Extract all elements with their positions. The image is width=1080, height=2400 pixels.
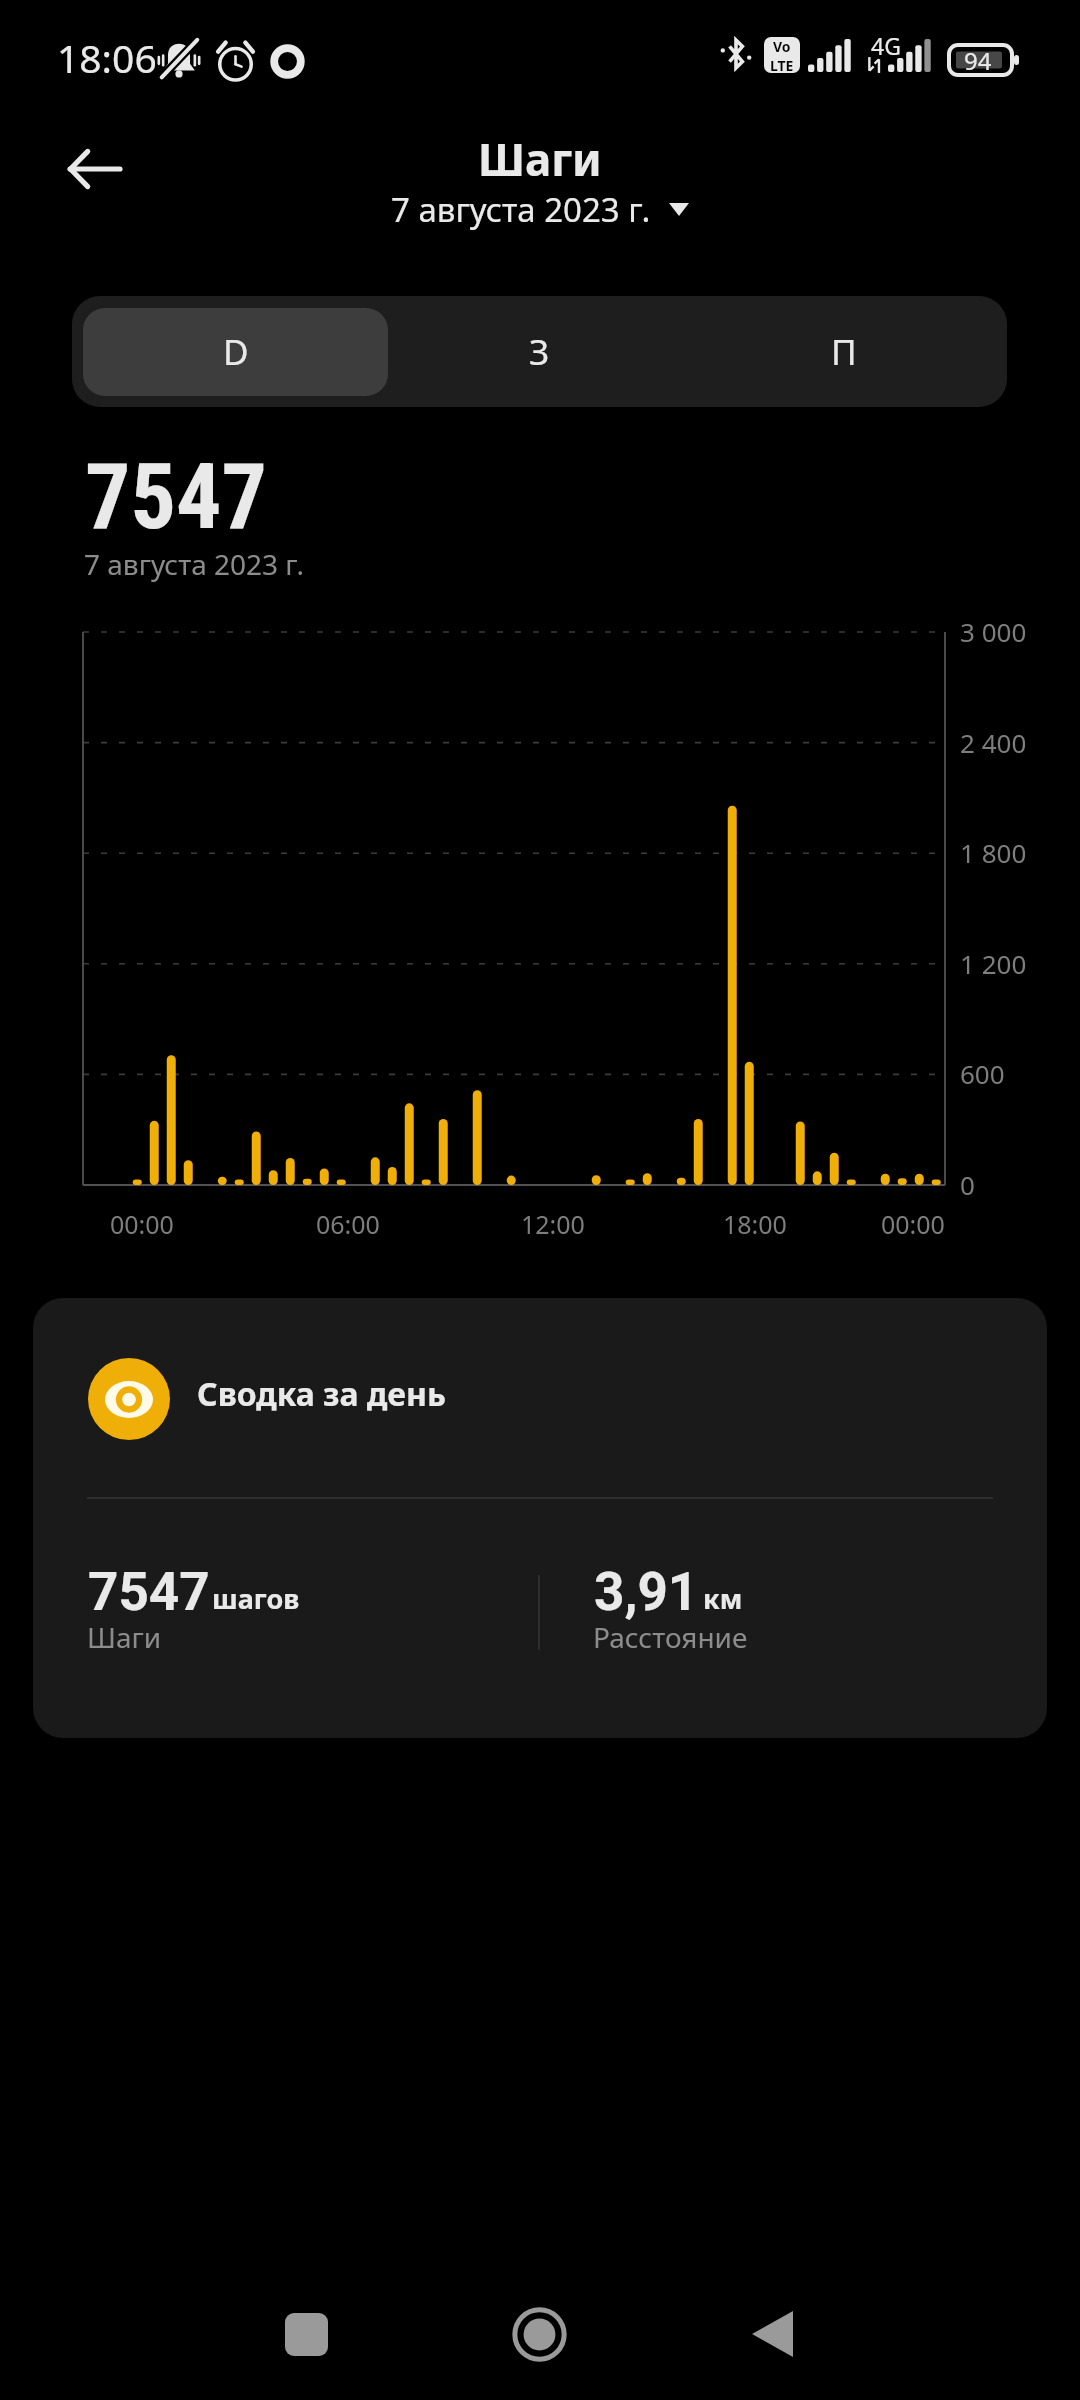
staticText: 7547	[85, 445, 267, 550]
staticText: шагов	[212, 1580, 300, 1617]
staticText: 00:00	[110, 1207, 174, 1241]
button[interactable]: Недавние приложения	[246, 2274, 366, 2394]
staticText: LTE	[770, 56, 794, 73]
staticText: 3 000	[960, 614, 1027, 649]
staticText: 18:06	[57, 31, 157, 84]
staticText: 3,91	[594, 1561, 699, 1623]
staticText: Vo	[773, 37, 791, 56]
button[interactable]: П	[691, 308, 996, 396]
button[interactable]: Назад	[712, 2274, 832, 2394]
staticText: 4G	[871, 30, 901, 61]
button[interactable]: 7 августа 2023 г.	[383, 183, 697, 236]
staticText: 06:00	[316, 1207, 380, 1241]
staticText: Сводка за день	[197, 1372, 446, 1416]
staticText: 7 августа 2023 г.	[84, 545, 304, 583]
staticText: Шаги	[87, 1618, 162, 1656]
button[interactable]: Главный экран	[479, 2274, 599, 2394]
staticText: км	[703, 1580, 743, 1617]
staticText: 1 800	[960, 835, 1027, 870]
staticText: З	[529, 328, 550, 376]
staticText: 7 августа 2023 г.	[391, 187, 651, 232]
button[interactable]: Сводка за день	[33, 1298, 1047, 1738]
staticText: 94	[964, 44, 992, 74]
staticText: Расстояние	[593, 1618, 748, 1656]
staticText: 00:00	[881, 1207, 945, 1241]
staticText: 18:00	[723, 1207, 787, 1241]
staticText: Шаги	[478, 129, 602, 189]
button[interactable]: D	[83, 308, 388, 396]
staticText: 600	[960, 1056, 1005, 1091]
staticText: 2 400	[960, 725, 1027, 760]
staticText: D	[223, 328, 249, 376]
staticText: П	[831, 328, 857, 376]
staticText: 12:00	[521, 1207, 585, 1241]
staticText: 0	[960, 1167, 975, 1202]
staticText: 7547	[88, 1561, 210, 1623]
button[interactable]: Назад	[45, 119, 145, 219]
button[interactable]: З	[387, 308, 692, 396]
staticText: 1 200	[960, 946, 1027, 981]
